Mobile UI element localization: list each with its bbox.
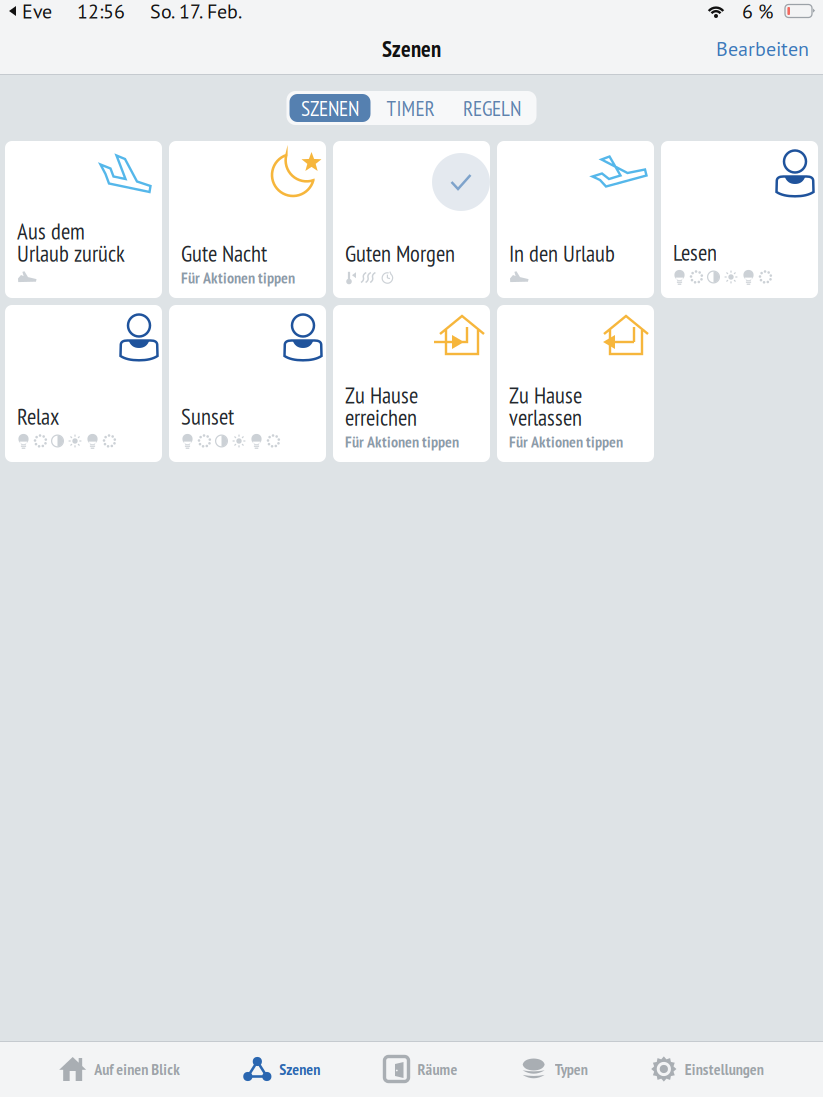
staticText: In den Urlaub xyxy=(509,239,615,268)
button[interactable]: Räume xyxy=(379,1044,461,1094)
staticText: Sunset xyxy=(181,402,234,431)
staticText: Zu Hause xyxy=(345,380,418,410)
button[interactable]: Bearbeiten xyxy=(702,23,823,73)
staticText: Auf einen Blick xyxy=(94,1059,180,1079)
button[interactable]: Einstellungen xyxy=(647,1044,768,1094)
button[interactable]: Sunset xyxy=(169,305,326,462)
staticText: 6 % xyxy=(727,0,783,24)
staticText: TIMER xyxy=(386,94,434,122)
button[interactable]: Gute Nacht xyxy=(169,141,326,298)
staticText: Szenen xyxy=(279,1059,320,1079)
staticText: Typen xyxy=(555,1059,588,1079)
button[interactable]: Zu Hause xyxy=(333,305,490,462)
button[interactable]: Szenen xyxy=(239,1044,324,1094)
staticText: Relax xyxy=(17,402,59,431)
button[interactable]: Aus dem xyxy=(5,141,162,298)
button[interactable]: Zu Hause xyxy=(497,305,654,462)
staticText: SZENEN xyxy=(301,94,359,122)
staticText: Zu Hause xyxy=(509,380,582,410)
staticText: Für Aktionen tippen xyxy=(509,431,623,452)
button[interactable]: Lesen xyxy=(661,141,818,298)
button[interactable]: TIMER xyxy=(370,94,450,122)
staticText: Aus dem xyxy=(17,216,85,246)
staticText: Bearbeiten xyxy=(716,36,809,61)
button[interactable]: Typen xyxy=(517,1044,592,1094)
button[interactable]: In den Urlaub xyxy=(497,141,654,298)
button[interactable]: SZENEN xyxy=(289,94,370,122)
button[interactable]: Relax xyxy=(5,305,162,462)
staticText: verlassen xyxy=(509,403,582,432)
staticText: Gute Nacht xyxy=(181,239,267,268)
staticText: Räume xyxy=(417,1059,457,1079)
staticText: Guten Morgen xyxy=(345,239,455,268)
staticText: Für Aktionen tippen xyxy=(345,431,459,452)
staticText: Szenen xyxy=(382,34,441,63)
staticText: erreichen xyxy=(345,403,417,432)
button[interactable]: Guten Morgen xyxy=(333,141,490,298)
staticText: REGELN xyxy=(463,94,521,122)
staticText: Für Aktionen tippen xyxy=(181,267,295,288)
button[interactable]: Auf einen Blick xyxy=(55,1044,184,1094)
staticText: Urlaub zurück xyxy=(17,239,125,268)
staticText: Lesen xyxy=(673,238,717,267)
button[interactable]: REGELN xyxy=(450,94,533,122)
staticText: Eve 12:56 So. 17. Feb. xyxy=(17,0,242,24)
staticText: Einstellungen xyxy=(685,1059,764,1079)
